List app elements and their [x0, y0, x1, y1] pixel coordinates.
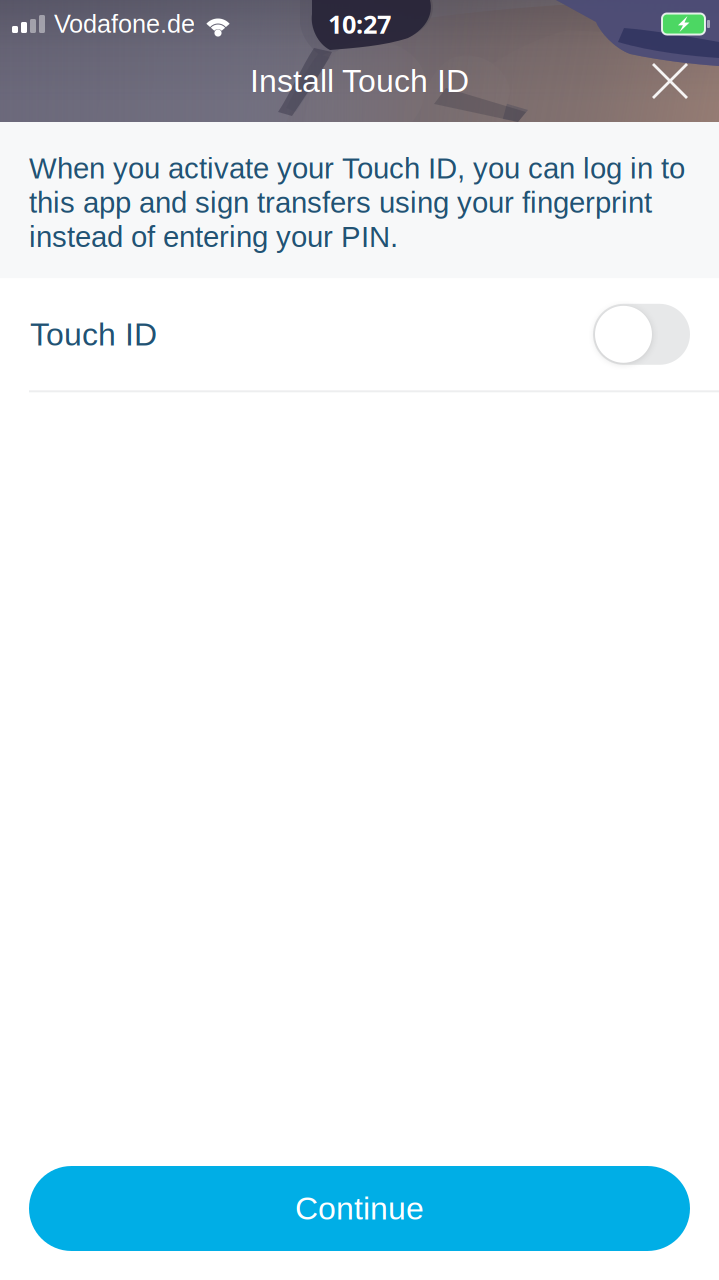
button[interactable]: Close — [633, 44, 707, 118]
staticText: 10:27 — [328, 7, 391, 41]
staticText: Vodafone.de — [54, 10, 195, 38]
staticText: Install Touch ID — [250, 63, 469, 99]
staticText: Touch ID — [30, 316, 157, 352]
staticText: Continue — [295, 1191, 424, 1226]
button[interactable]: Continue — [29, 1166, 690, 1251]
staticText: When you activate your Touch ID, you can… — [29, 152, 685, 253]
button[interactable]: Touch ID — [0, 278, 719, 390]
